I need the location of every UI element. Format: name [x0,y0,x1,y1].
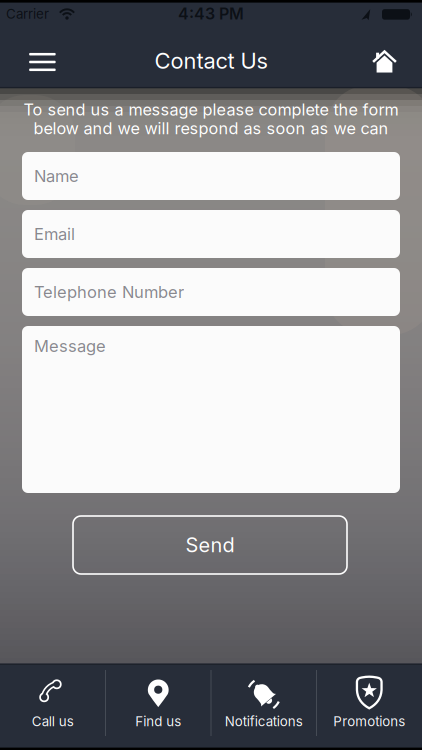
staticText: Send [185,533,234,557]
button[interactable]: Send [73,516,347,574]
button[interactable]: Notifications [211,665,316,750]
staticText: below and we will respond as soon as we … [33,118,388,138]
button[interactable]: Promotions [316,665,422,750]
button[interactable]: Name [22,152,400,200]
staticText: Carrier [6,6,49,22]
staticText: Promotions [333,713,405,729]
staticText: Contact Us [154,47,267,74]
staticText: Telephone Number [34,282,184,302]
button[interactable] [360,39,408,83]
staticText: Email [34,224,75,244]
staticText: Call us [32,713,74,729]
staticText: Name [34,166,79,186]
staticText: 4:43 PM [178,4,244,23]
button[interactable]: Message [22,326,400,493]
staticText: To send us a message please complete the… [23,100,398,119]
staticText: Find us [135,713,181,729]
button[interactable] [18,40,66,84]
staticText: Message [34,336,106,356]
button[interactable]: Email [22,210,400,258]
button[interactable]: Call us [0,665,105,750]
button[interactable]: Telephone Number [22,268,400,316]
button[interactable]: Find us [105,665,211,750]
staticText: Notifications [225,713,303,729]
